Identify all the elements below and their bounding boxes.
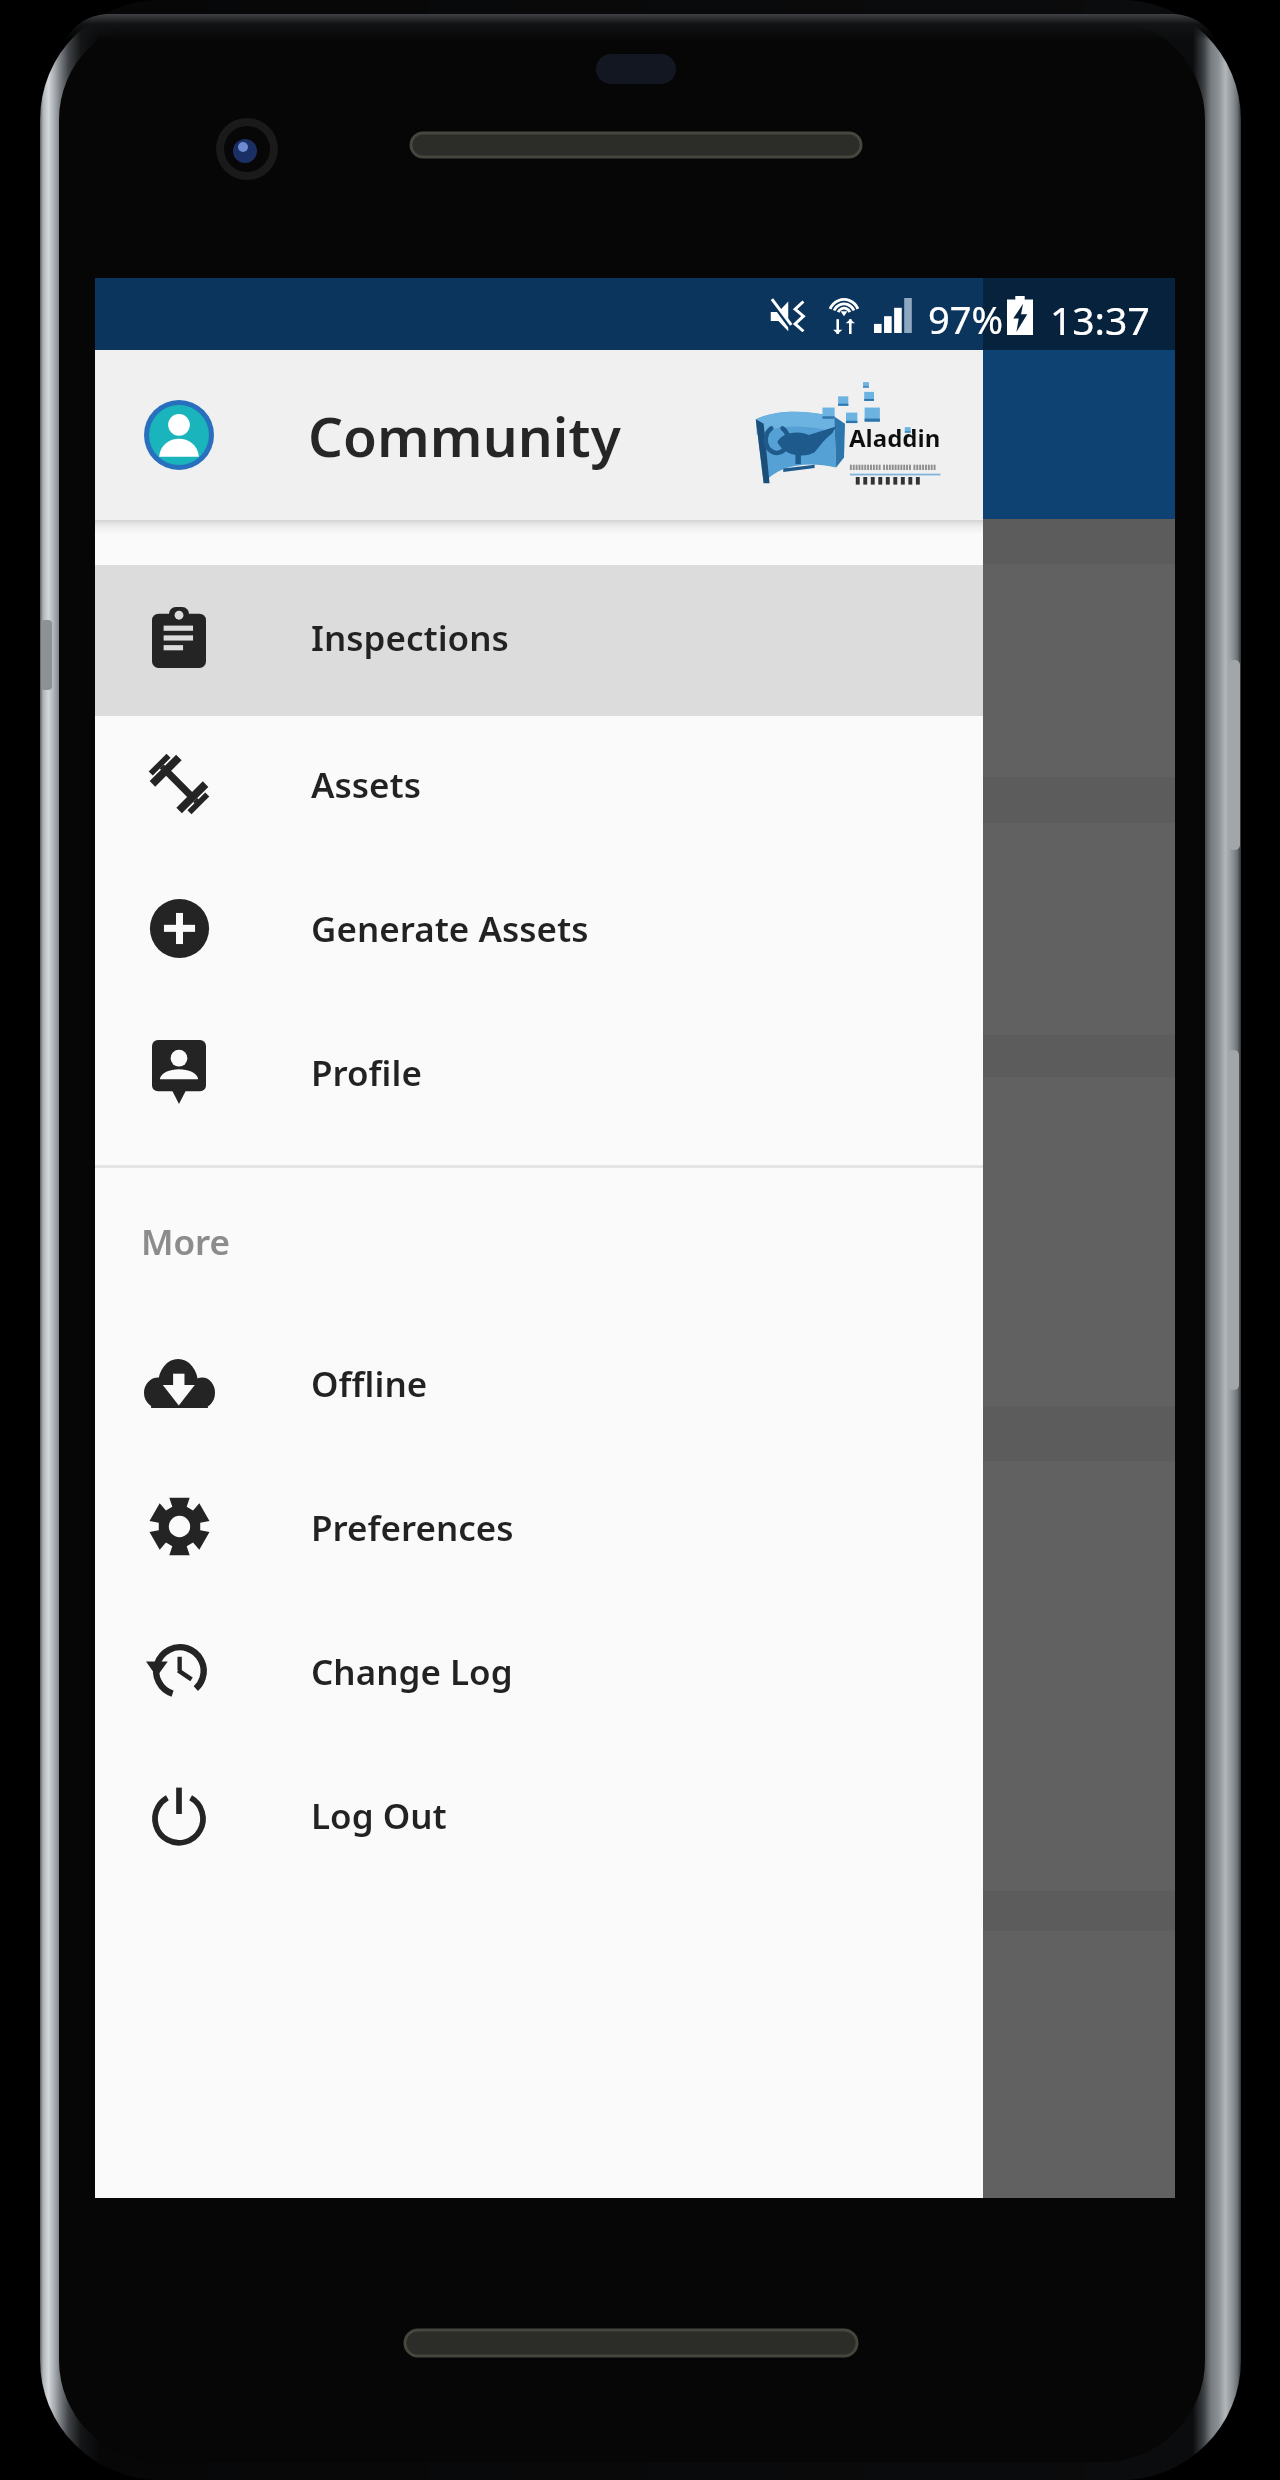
staticText: Offline	[311, 1360, 428, 1408]
staticText: Inspections	[311, 614, 509, 662]
staticText: Preferences	[311, 1504, 514, 1552]
button[interactable]: Assets	[95, 716, 983, 860]
staticText: Profile	[311, 1049, 422, 1097]
button[interactable]: Offline	[95, 1315, 983, 1459]
button[interactable]: Close navigation drawer	[95, 278, 1175, 2198]
staticText: Community	[308, 398, 621, 473]
staticText: More	[141, 1218, 231, 1266]
button[interactable]: Generate Assets	[95, 860, 983, 1004]
button[interactable]: Inspections	[95, 565, 983, 716]
button[interactable]: Change Log	[95, 1603, 983, 1747]
staticText: Generate Assets	[311, 905, 589, 953]
staticText: 13:37	[1050, 293, 1150, 346]
button[interactable]: Profile	[95, 1004, 983, 1148]
button[interactable]: Account	[142, 398, 216, 472]
staticText: Log Out	[311, 1792, 447, 1840]
button[interactable]: Aladdin Inspector	[747, 379, 943, 491]
staticText: Change Log	[311, 1648, 513, 1696]
button[interactable]: Preferences	[95, 1459, 983, 1603]
button[interactable]: Log Out	[95, 1747, 983, 1891]
staticText: 97%	[928, 293, 1004, 345]
staticText: Aladdin	[849, 421, 941, 454]
staticText: Assets	[311, 761, 421, 809]
